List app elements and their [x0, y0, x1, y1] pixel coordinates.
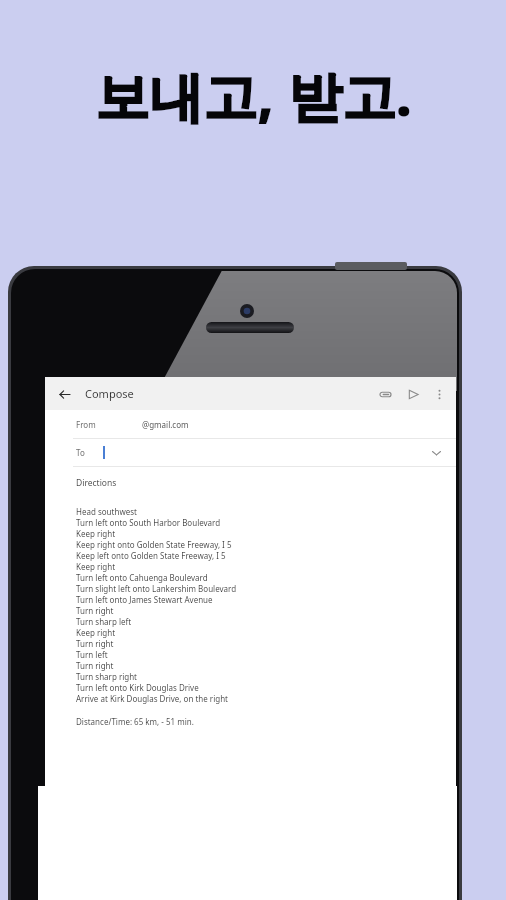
button[interactable]: More options: [428, 383, 450, 405]
staticText: Keep right: [76, 627, 116, 638]
staticText: Turn right: [76, 660, 114, 671]
staticText: Head southwest: [76, 506, 137, 517]
staticText: @gmail.com: [142, 419, 189, 430]
staticText: Turn sharp left: [76, 616, 132, 627]
button[interactable]: Back: [53, 383, 75, 405]
staticText: Turn left onto Cahuenga Boulevard: [76, 572, 208, 583]
staticText: Turn left onto Kirk Douglas Drive: [76, 682, 199, 693]
staticText: To: [76, 447, 85, 458]
staticText: Arrive at Kirk Douglas Drive, on the rig…: [76, 693, 228, 704]
button[interactable]: To: [45, 439, 456, 466]
staticText: Turn left onto James Stewart Avenue: [76, 594, 213, 605]
staticText: Keep right: [76, 561, 116, 572]
staticText: 보내고, 받고.: [95, 58, 412, 132]
staticText: Keep right onto Golden State Freeway, I …: [76, 539, 232, 550]
staticText: Compose: [85, 386, 134, 401]
staticText: Turn left onto South Harbor Boulevard: [76, 517, 221, 528]
staticText: From: [76, 419, 96, 430]
button[interactable]: Send: [402, 383, 424, 405]
staticText: Distance/Time: 65 km, - 51 min.: [76, 716, 194, 727]
staticText: Turn sharp right: [76, 671, 138, 682]
staticText: Keep right: [76, 528, 116, 539]
staticText: Turn right: [76, 638, 114, 649]
button[interactable]: From: [45, 410, 456, 438]
staticText: Turn right: [76, 605, 114, 616]
staticText: Turn slight left onto Lankershim Bouleva…: [76, 583, 237, 594]
staticText: Directions: [76, 477, 117, 489]
button[interactable]: Attach file: [374, 383, 396, 405]
staticText: Turn left: [76, 649, 108, 660]
button[interactable]: Expand recipients: [426, 443, 446, 463]
staticText: Keep left onto Golden State Freeway, I 5: [76, 550, 226, 561]
